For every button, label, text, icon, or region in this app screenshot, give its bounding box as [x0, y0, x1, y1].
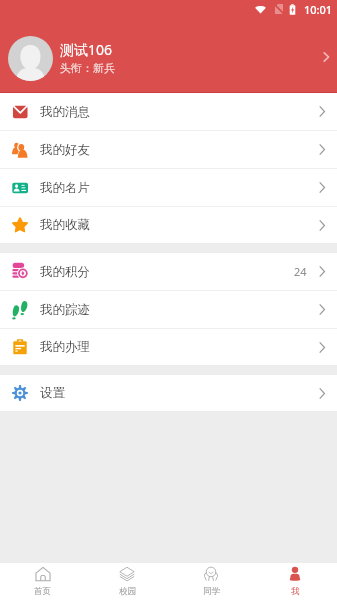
button[interactable]: 我的名片: [0, 169, 337, 207]
staticText: 我的好友: [40, 142, 90, 158]
staticText: 头衔：新兵: [60, 61, 115, 75]
button[interactable]: 同学: [169, 563, 253, 600]
button[interactable]: 我的办理: [0, 329, 337, 365]
staticText: 我: [291, 586, 300, 597]
staticText: 我的积分: [40, 264, 90, 280]
staticText: 我的办理: [40, 339, 90, 355]
staticText: 校园: [119, 586, 136, 597]
button[interactable]: 我的消息: [0, 93, 337, 131]
button[interactable]: 我的好友: [0, 131, 337, 169]
staticText: 测试106: [60, 40, 113, 59]
button[interactable]: 我的踪迹: [0, 291, 337, 329]
staticText: 同学: [203, 586, 220, 597]
staticText: 设置: [40, 385, 65, 401]
button[interactable]: 我的积分: [0, 253, 337, 291]
button[interactable]: 我: [253, 563, 337, 600]
staticText: 我的踪迹: [40, 302, 90, 318]
staticText: 我的名片: [40, 180, 90, 196]
staticText: 我的消息: [40, 104, 90, 120]
button[interactable]: 测试106: [0, 23, 337, 93]
button[interactable]: 校园: [85, 563, 169, 600]
staticText: 首页: [34, 586, 51, 597]
staticText: 10:01: [304, 2, 333, 17]
staticText: 24: [294, 264, 307, 279]
button[interactable]: 我的收藏: [0, 207, 337, 243]
button[interactable]: 首页: [0, 563, 85, 600]
button[interactable]: 设置: [0, 375, 337, 411]
staticText: 我的收藏: [40, 217, 90, 233]
